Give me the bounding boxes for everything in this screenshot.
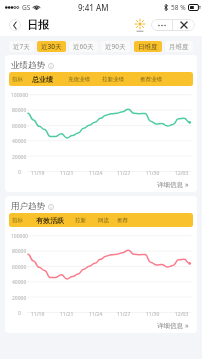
staticText: 0 — [18, 169, 21, 176]
staticText: 11/19 — [31, 170, 45, 177]
staticText: 80000 — [12, 107, 27, 114]
staticText: 12/03 — [175, 311, 189, 318]
button[interactable]: 拉新 — [75, 213, 86, 227]
staticText: 0 — [18, 310, 21, 317]
staticText: 11/19 — [31, 311, 45, 318]
staticText: 11/24 — [89, 311, 103, 318]
button[interactable]: 近90天 — [101, 41, 130, 52]
button[interactable]: 指标 — [12, 213, 23, 227]
staticText: 近30天 — [41, 42, 62, 51]
button[interactable]: 月维度 — [165, 41, 193, 52]
staticText: 拉新 — [75, 217, 86, 224]
staticText: 100000 — [11, 233, 29, 240]
staticText: » — [185, 321, 189, 331]
staticText: 近7天 — [13, 42, 30, 51]
staticText: 近90天 — [105, 42, 126, 51]
button[interactable]: Back — [9, 19, 21, 31]
staticText: 58 % — [171, 3, 186, 12]
button[interactable]: 充值业绩 — [68, 72, 90, 86]
staticText: 40000 — [12, 279, 27, 286]
staticText: 用户趋势 — [11, 201, 45, 212]
staticText: 日报 — [27, 18, 49, 32]
staticText: 11/27 — [117, 311, 131, 318]
button[interactable]: 日维度 — [134, 41, 162, 52]
staticText: 推荐 — [117, 217, 128, 224]
staticText: 11/21 — [60, 311, 74, 318]
staticText: 拉新业绩 — [102, 76, 124, 83]
staticText: 日维度 — [138, 43, 158, 51]
button[interactable]: 回流 — [98, 213, 109, 227]
staticText: 业绩趋势 — [11, 60, 45, 71]
staticText: 近60天 — [73, 42, 94, 51]
staticText: 月维度 — [169, 43, 189, 51]
staticText: 20000 — [12, 295, 27, 302]
staticText: 100000 — [11, 92, 29, 99]
button[interactable]: Close — [173, 19, 195, 31]
staticText: 总业绩 — [32, 75, 53, 84]
button[interactable]: 推荐业绩 — [140, 72, 162, 86]
staticText: 推荐业绩 — [140, 76, 162, 83]
staticText: 20000 — [12, 154, 27, 161]
staticText: » — [185, 180, 189, 190]
button[interactable]: 近30天 — [37, 41, 66, 52]
button[interactable]: 详细信息 — [157, 180, 189, 190]
staticText: 60000 — [12, 264, 27, 271]
staticText: 60000 — [12, 123, 27, 130]
button[interactable]: 近7天 — [9, 41, 34, 52]
staticText: 充值业绩 — [68, 76, 90, 83]
staticText: 详细信息 — [157, 181, 183, 189]
staticText: 9:41 AM — [78, 2, 109, 13]
staticText: 11/27 — [117, 170, 131, 177]
staticText: 11/24 — [89, 170, 103, 177]
button[interactable]: 拉新业绩 — [102, 72, 124, 86]
staticText: 详细信息 — [157, 322, 183, 330]
staticText: 11/30 — [146, 311, 160, 318]
button[interactable]: 指标 — [12, 72, 23, 86]
staticText: 11/30 — [146, 170, 160, 177]
staticText: 有效活跃 — [36, 216, 64, 225]
staticText: GS — [22, 3, 31, 12]
button[interactable]: 总业绩 — [32, 72, 53, 86]
staticText: 11/21 — [60, 170, 74, 177]
staticText: 指标 — [12, 217, 23, 224]
staticText: 指标 — [12, 76, 23, 83]
staticText: 12/03 — [175, 170, 189, 177]
button[interactable]: 有效活跃 — [36, 213, 64, 227]
button[interactable]: 近60天 — [69, 41, 98, 52]
button[interactable]: 详细信息 — [157, 321, 189, 331]
button[interactable]: Brightness — [134, 18, 146, 32]
button[interactable]: More options — [151, 19, 172, 31]
staticText: 40000 — [12, 138, 27, 145]
staticText: 80000 — [12, 248, 27, 255]
staticText: 回流 — [98, 217, 109, 224]
button[interactable]: 推荐 — [117, 213, 128, 227]
